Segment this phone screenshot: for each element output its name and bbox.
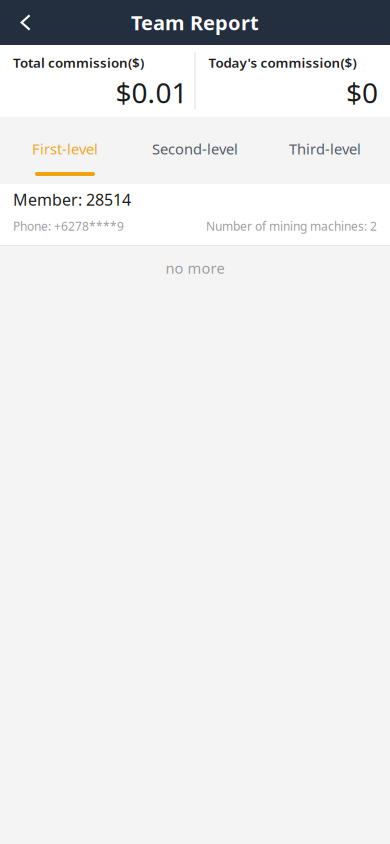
staticText: Number of mining machines: 2 [206,218,377,234]
staticText: Member: 28514 [13,189,131,210]
button[interactable]: Third-level [260,118,390,184]
staticText: Team Report [131,9,259,36]
staticText: $0.01 [115,74,187,111]
staticText: no more [165,258,224,278]
button[interactable]: Back [0,0,51,45]
button[interactable]: First-level [0,118,130,184]
staticText: Third-level [289,139,361,158]
staticText: Second-level [152,139,238,158]
staticText: Phone: +6278****9 [13,218,124,234]
staticText: Total commission($) [13,54,144,71]
staticText: $0 [346,74,378,111]
button[interactable]: Second-level [130,118,260,184]
staticText: Today's commission($) [208,54,356,71]
button[interactable]: Member: 28514 [0,184,390,246]
staticText: First-level [32,139,98,158]
